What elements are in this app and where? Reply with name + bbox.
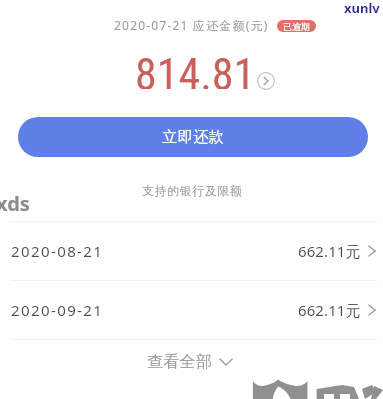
- staticText: 2020-08-21: [11, 241, 104, 261]
- button[interactable]: 立即还款: [18, 117, 368, 157]
- staticText: 已逾期: [283, 21, 310, 32]
- button[interactable]: 2020-09-21: [0, 281, 383, 339]
- button[interactable]: 2020-08-21: [0, 222, 383, 280]
- staticText: 662.11元: [298, 300, 361, 320]
- staticText: 查看全部: [147, 352, 213, 372]
- button[interactable]: 查看全部: [0, 350, 381, 374]
- staticText: 2020-09-21: [11, 300, 104, 320]
- button[interactable]: 已逾期: [277, 20, 316, 32]
- staticText: 立即还款: [162, 128, 224, 147]
- staticText: 662.11元: [298, 241, 361, 261]
- staticText: 814.81: [135, 49, 256, 89]
- button[interactable]: 查看账单详情: [257, 72, 275, 90]
- staticText: xds: [0, 190, 30, 217]
- button[interactable]: 支持的银行及限额: [142, 183, 242, 198]
- staticText: xunlv: [344, 0, 380, 17]
- staticText: 2020-07-21 应还金额(元): [114, 17, 269, 33]
